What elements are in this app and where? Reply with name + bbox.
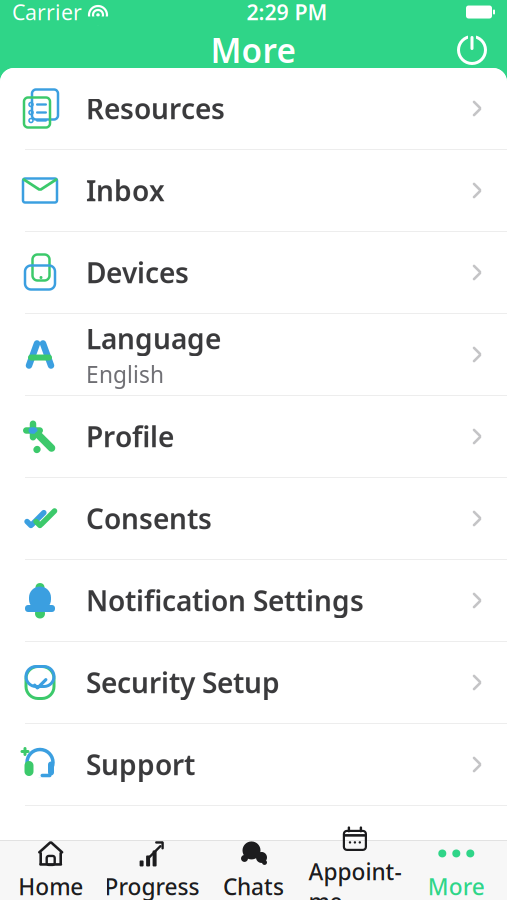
staticText: Language — [86, 320, 221, 357]
staticText: Consents — [86, 500, 212, 537]
button[interactable]: Home — [0, 840, 101, 900]
staticText: Notification Settings — [86, 582, 364, 619]
button[interactable]: Appointme… — [304, 840, 406, 900]
staticText: More — [210, 28, 296, 72]
staticText: Profile — [86, 418, 174, 455]
staticText: Chats — [223, 871, 284, 900]
staticText: Support — [86, 746, 195, 783]
staticText: English — [86, 359, 164, 389]
staticText: Carrier — [12, 0, 82, 26]
staticText: Progress — [105, 871, 200, 900]
button[interactable]: Support — [0, 724, 507, 806]
button[interactable]: Consents — [0, 478, 507, 560]
button[interactable]: Chats — [203, 840, 304, 900]
staticText: Security Setup — [86, 664, 280, 701]
staticText: 2:29 PM — [246, 0, 327, 26]
button[interactable]: Language — [0, 314, 507, 396]
button[interactable]: Progress — [101, 840, 203, 900]
staticText: Inbox — [86, 172, 165, 209]
staticText: Resources — [86, 90, 225, 127]
staticText: Appointme… — [308, 856, 401, 900]
staticText: Home — [18, 871, 83, 900]
button[interactable]: More — [406, 840, 507, 900]
button[interactable]: Inbox — [0, 150, 507, 232]
staticText: Devices — [86, 254, 189, 291]
button[interactable]: Log out — [447, 25, 497, 75]
button[interactable]: Notification Settings — [0, 560, 507, 642]
button[interactable]: Devices — [0, 232, 507, 314]
staticText: More — [428, 871, 485, 900]
button[interactable]: Security Setup — [0, 642, 507, 724]
button[interactable]: Profile — [0, 396, 507, 478]
button[interactable]: Resources — [0, 68, 507, 150]
